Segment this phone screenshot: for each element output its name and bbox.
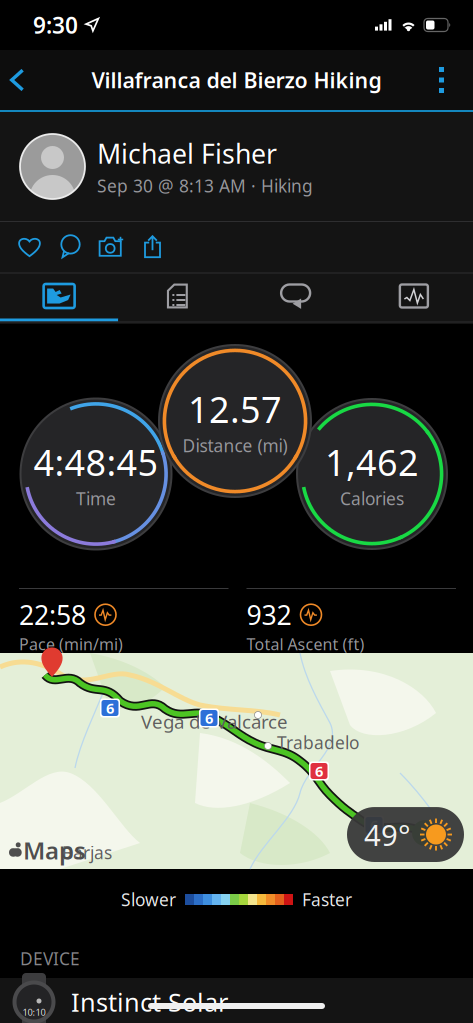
button[interactable]: More options [417, 51, 473, 109]
button[interactable]: Charts [355, 273, 473, 321]
staticText: Calories [340, 487, 404, 510]
button[interactable]: Back [0, 51, 44, 108]
staticText: DEVICE [20, 947, 80, 970]
staticText: 4:48:45 [33, 438, 158, 486]
button[interactable]: Laps [236, 273, 355, 321]
staticText: Slower [121, 888, 176, 911]
button[interactable]: Photos [0, 273, 118, 321]
staticText: Villafranca del Bierzo Hiking [91, 66, 381, 94]
staticText: Maps [23, 834, 86, 866]
staticText: Distance (mi) [182, 434, 287, 457]
staticText: Vega de Valcarce [141, 709, 288, 734]
staticText: 932 [246, 597, 291, 632]
button[interactable]: Like [9, 222, 50, 271]
staticText: Instinct Solar [71, 985, 228, 1019]
staticText: 6 [106, 698, 114, 718]
staticText: Michael Fisher [97, 136, 277, 171]
staticText: 12.57 [188, 385, 282, 433]
staticText: Total Ascent (ft) [246, 633, 364, 655]
staticText: 1,462 [325, 438, 419, 486]
staticText: Time [76, 487, 116, 510]
staticText: Faster [302, 888, 352, 911]
staticText: 9:30 [33, 10, 78, 40]
button[interactable]: Share [132, 222, 173, 271]
button[interactable]: Comment [50, 222, 91, 271]
staticText: Trabadelo [277, 731, 359, 754]
button[interactable]: 10:10 [0, 978, 473, 1023]
staticText: Sep 30 @ 8:13 AM · Hiking [97, 174, 313, 197]
button[interactable]: Splits [118, 273, 236, 321]
staticText: Pace (min/mi) [19, 633, 123, 655]
staticText: 10:10 [22, 1006, 45, 1018]
button[interactable]: Add photo [91, 222, 132, 271]
staticText: 6 [205, 708, 213, 728]
staticText: 6 [315, 761, 323, 781]
staticText: 6 [370, 815, 378, 835]
staticText: 22:58 [19, 597, 86, 632]
staticText: Barjas [62, 841, 112, 864]
staticText: 49° [364, 815, 411, 854]
